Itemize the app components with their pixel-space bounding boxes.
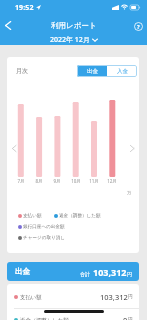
staticText: 10月 [71,178,81,184]
staticText: 8月 [35,178,43,184]
staticText: 出金 [87,68,98,75]
button[interactable]: 2022年 12月 [50,34,98,45]
staticText: 103,312 [100,292,128,302]
button[interactable]: 返金（調整）した額 [7,309,139,320]
staticText: 合計 [80,271,90,277]
staticText: 9月 [53,178,61,184]
staticText: 返金（調整）した額 [59,213,101,219]
staticText: 利用レポート [51,21,97,30]
staticText: 円 [127,271,132,277]
staticText: 11月 [89,178,99,184]
button[interactable]: 入金 [107,65,137,77]
button[interactable]: 出金 [7,262,139,281]
staticText: 入金 [117,68,128,75]
staticText: 銀行口座への出金額 [23,224,65,230]
staticText: チャージの取り消し [23,235,65,241]
staticText: 19:52 [15,3,34,13]
staticText: 7月 [17,178,25,184]
button[interactable]: Help [131,19,145,33]
staticText: 支払い額 [23,213,42,219]
button[interactable]: Previous [7,141,21,155]
button[interactable]: 支払い額 [7,286,139,308]
button[interactable]: Next [125,141,139,155]
staticText: 出金 [15,267,30,276]
staticText: 2022年 12月 [50,35,90,45]
button[interactable]: Back [0,17,16,34]
staticText: 0 [123,315,128,320]
button[interactable]: 出金 [77,65,107,77]
staticText: 円 [128,294,133,300]
staticText: 12月 [107,178,117,184]
staticText: 万 [127,190,132,195]
staticText: 月次 [16,67,28,75]
staticText: 円 [128,317,133,320]
staticText: ? [137,23,140,30]
staticText: 支払い額 [20,294,42,301]
staticText: 返金（調整）した額 [20,317,69,320]
staticText: 103,312 [93,266,127,278]
